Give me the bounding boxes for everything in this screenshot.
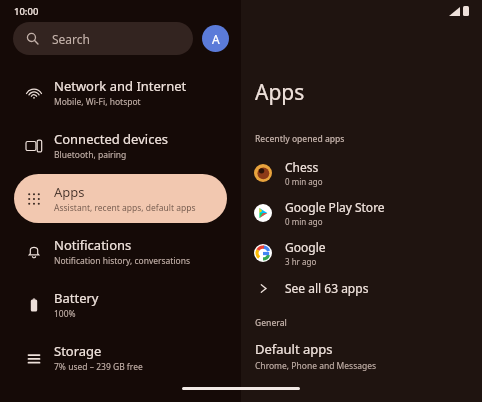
staticText: Google [285, 239, 326, 255]
button[interactable]: Google Play Store [241, 193, 482, 233]
button[interactable]: Account [202, 25, 229, 52]
button[interactable]: Chess [241, 153, 482, 193]
staticText: See all 63 apps [285, 280, 369, 296]
staticText: Assistant, recent apps, default apps [54, 202, 196, 214]
staticText: Network and Internet [54, 77, 187, 95]
button[interactable]: Google [241, 233, 482, 273]
button[interactable]: Sound and vibration [14, 386, 227, 400]
staticText: 0 min ago [285, 176, 323, 187]
button[interactable]: Default apps [241, 340, 482, 372]
button[interactable]: Apps [14, 174, 227, 223]
staticText: Chrome, Phone and Messages [255, 360, 377, 372]
button[interactable]: Notifications [14, 227, 227, 276]
staticText: General [255, 317, 287, 329]
staticText: 7% used – 239 GB free [54, 361, 143, 373]
button[interactable]: Battery [14, 280, 227, 329]
staticText: A [212, 31, 220, 47]
staticText: Connected devices [54, 130, 168, 148]
staticText: 10:00 [14, 5, 39, 18]
staticText: Notification history, conversations [54, 255, 191, 267]
staticText: Default apps [255, 340, 333, 358]
staticText: 0 min ago [285, 216, 323, 227]
staticText: Mobile, Wi-Fi, hotspot [54, 96, 141, 108]
staticText: Bluetooth, pairing [54, 149, 127, 161]
button[interactable]: Connected devices [14, 121, 227, 170]
staticText: 100% [54, 308, 76, 320]
staticText: Search [52, 31, 90, 47]
staticText: Storage [54, 342, 102, 360]
staticText: Chess [285, 159, 319, 175]
button[interactable]: Search [13, 22, 193, 55]
staticText: Recently opened apps [255, 133, 345, 145]
staticText: Notifications [54, 236, 132, 254]
button[interactable]: Network and Internet [14, 68, 227, 117]
staticText: 3 hr ago [285, 256, 317, 267]
staticText: Apps [54, 183, 85, 201]
button[interactable]: Storage [14, 333, 227, 382]
staticText: Battery [54, 289, 99, 307]
staticText: Apps [255, 78, 305, 107]
button[interactable]: See all 63 apps [241, 273, 482, 303]
staticText: Google Play Store [285, 199, 385, 215]
